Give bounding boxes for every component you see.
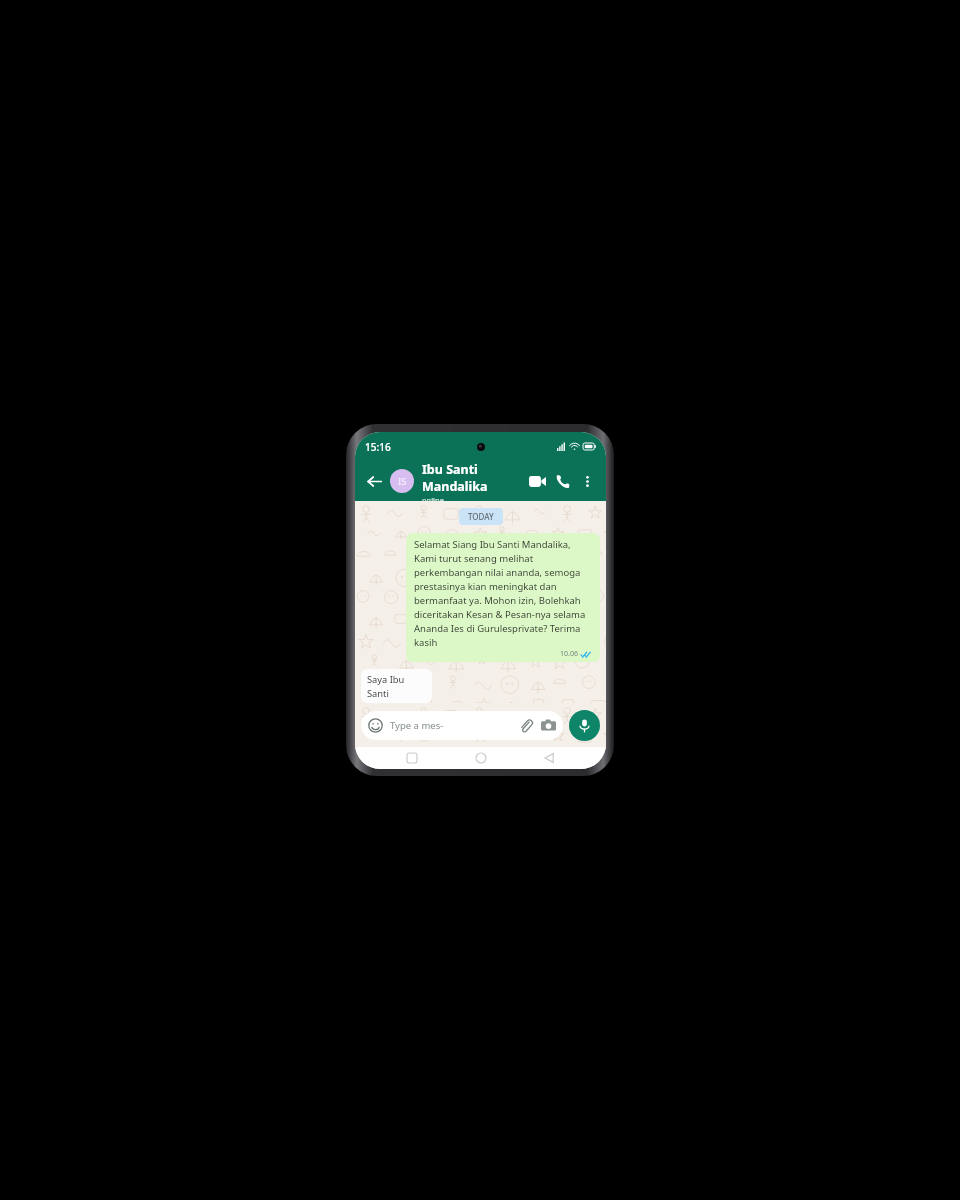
button[interactable]: Emoji [361,711,563,740]
button[interactable]: Home [470,747,492,769]
staticText: IS [398,475,407,487]
button[interactable]: More options [576,470,598,492]
staticText: 15:16 [365,440,391,454]
staticText: Selamat Siang Ibu Santi Mandalika, Kami … [414,538,592,649]
button[interactable]: IS [390,461,524,501]
staticText: TODAY [468,511,494,522]
staticText: Saya Ibu Santi Mandalika, Orang Tua Sisw… [367,673,427,700]
button[interactable]: Video call [524,468,550,494]
staticText: Type a mes- [390,719,519,732]
button[interactable]: Selamat Siang Ibu Santi Mandalika, Kami … [406,533,600,662]
button[interactable]: Recents [401,747,423,769]
staticText: Ibu Santi Mandalika [422,461,524,495]
staticText: 10.06 [560,649,578,659]
staticText: online [422,495,444,501]
other: Camera [541,718,556,733]
button[interactable]: Back [363,470,385,492]
button[interactable]: Voice call [550,468,576,494]
button[interactable]: Back [538,747,560,769]
button[interactable]: Voice message [569,710,600,741]
other: Attach [519,719,533,733]
other: Emoji [368,718,383,733]
button[interactable]: Saya Ibu Santi Mandalika, Orang Tua Sisw… [361,669,432,703]
